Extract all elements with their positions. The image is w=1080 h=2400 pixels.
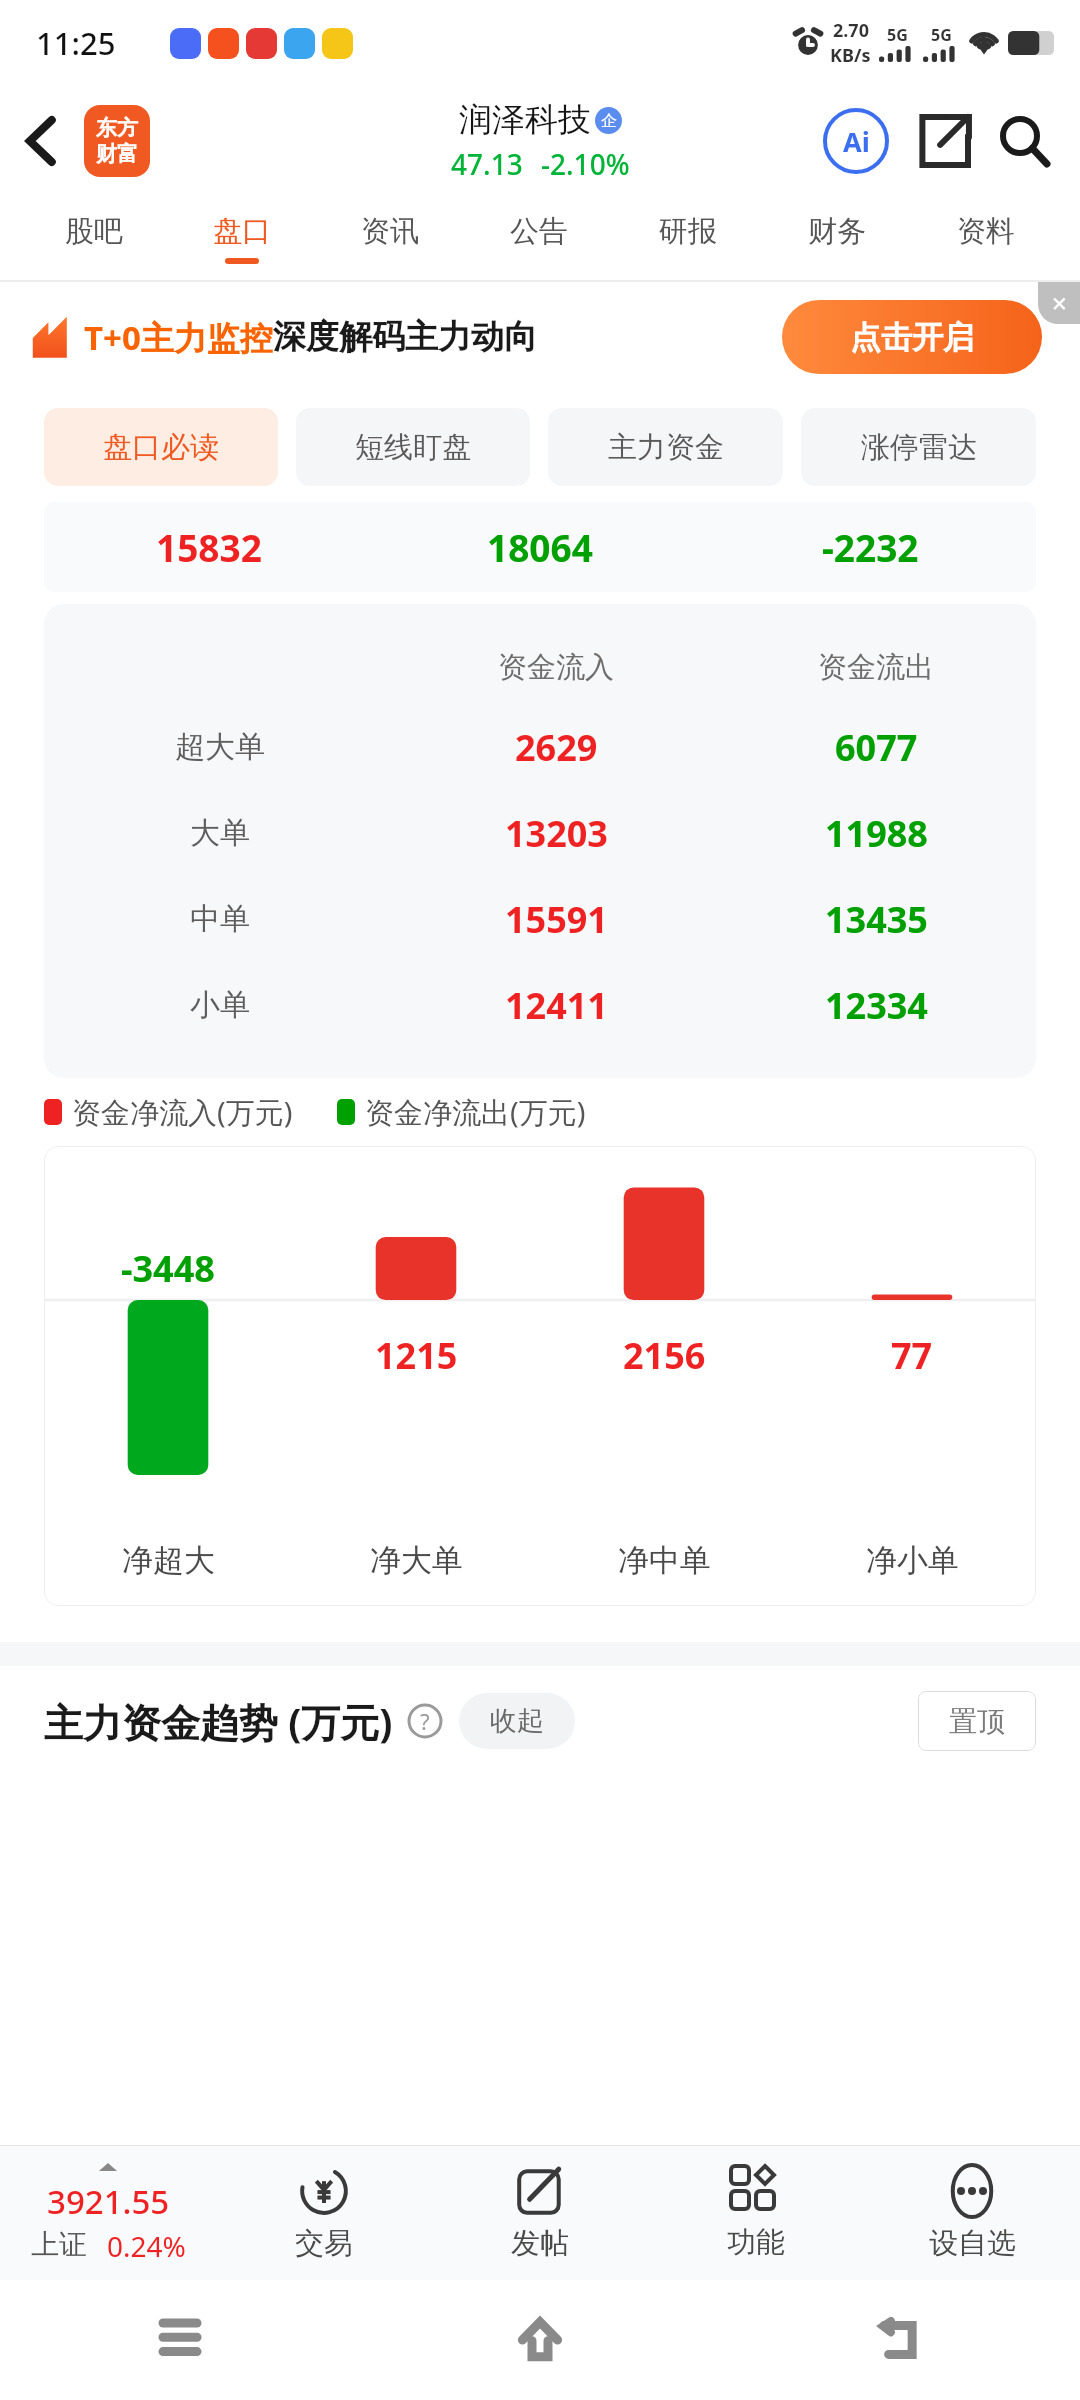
staticText: 1215 [375, 1331, 458, 1380]
staticText: 公告 [510, 213, 568, 250]
staticText: 资料 [957, 213, 1015, 250]
staticText: 资金净流入(万元) [72, 1092, 293, 1132]
staticText: T+0主力监控 [84, 315, 273, 360]
staticText: 东方 [96, 115, 138, 141]
staticText: 涨停雷达 [861, 429, 977, 466]
staticText: 资金流入 [498, 649, 614, 686]
button[interactable]: 财务 [762, 196, 911, 280]
button[interactable]: 股吧 [20, 196, 168, 280]
staticText: 润泽科技 [459, 99, 591, 141]
staticText: 2629 [515, 723, 598, 772]
staticText: 财富 [96, 141, 138, 167]
staticText: 主力资金趋势 (万元) [44, 1695, 393, 1748]
staticText: 超大单 [175, 728, 265, 766]
staticText: 设自选 [929, 2225, 1016, 2262]
staticText: 5G [887, 24, 908, 46]
staticText: 点击开启 [850, 318, 974, 357]
staticText: 18064 [487, 522, 593, 572]
staticText: 交易 [295, 2225, 353, 2262]
button[interactable]: 功能 [648, 2146, 864, 2280]
staticText: ✕ [1051, 292, 1068, 315]
button[interactable]: 最近任务 [150, 2310, 210, 2370]
staticText: 净大单 [370, 1541, 463, 1580]
staticText: 小单 [190, 986, 250, 1024]
staticText: 短线盯盘 [355, 429, 471, 466]
staticText: 资讯 [361, 213, 419, 250]
button[interactable]: 公告 [464, 196, 613, 280]
button[interactable]: 小单 [44, 962, 1036, 1048]
button[interactable]: 研报 [613, 196, 762, 280]
button[interactable]: 交易 [216, 2146, 432, 2280]
staticText: KB/s [830, 43, 871, 68]
button[interactable]: 盘口 [168, 196, 316, 280]
staticText: 财务 [808, 213, 866, 250]
button[interactable]: 发帖 [432, 2146, 648, 2280]
staticText: 0.24% [107, 2227, 186, 2265]
staticText: 发帖 [511, 2225, 569, 2262]
button[interactable]: 分享 [912, 109, 976, 173]
staticText: 盘口必读 [103, 429, 219, 466]
staticText: 收起 [490, 1704, 544, 1738]
staticText: 77 [891, 1331, 933, 1380]
staticText: Ai [843, 123, 870, 160]
staticText: 大单 [190, 814, 250, 852]
staticText: -2232 [822, 522, 919, 572]
button[interactable]: 搜索 [992, 109, 1056, 173]
button[interactable]: 点击开启 [782, 300, 1042, 374]
staticText: 置顶 [949, 1704, 1005, 1739]
staticText: 企 [601, 111, 617, 131]
staticText: 净超大 [122, 1541, 215, 1580]
button[interactable]: 中单 [44, 876, 1036, 962]
staticText: 13203 [505, 809, 608, 858]
staticText: 主力资金 [608, 429, 724, 466]
staticText: 15832 [156, 522, 262, 572]
staticText: 47.13 [451, 145, 523, 183]
staticText: 12411 [505, 981, 608, 1030]
staticText: 2.70 [833, 18, 869, 43]
staticText: 15591 [505, 895, 608, 944]
button[interactable]: 东方财富 [84, 105, 150, 177]
staticText: 功能 [727, 2224, 785, 2261]
staticText: 研报 [659, 213, 717, 250]
staticText: 资金流出 [818, 649, 934, 686]
button[interactable]: 置顶 [918, 1691, 1036, 1751]
button[interactable]: 大单 [44, 790, 1036, 876]
staticText: 13435 [825, 895, 928, 944]
button[interactable]: 盘口必读 [44, 408, 278, 486]
staticText: 11988 [825, 809, 928, 858]
staticText: 5G [931, 24, 952, 46]
staticText: 中单 [190, 900, 250, 938]
button[interactable]: 超大单 [44, 704, 1036, 790]
button[interactable]: 收起 [459, 1693, 575, 1749]
staticText: -2.10% [541, 145, 630, 183]
button[interactable]: 3921.55 [0, 2146, 216, 2280]
button[interactable]: 关闭 [1038, 282, 1080, 324]
staticText: -3448 [121, 1244, 215, 1293]
staticText: 盘口 [213, 213, 271, 250]
button[interactable]: 主页 [510, 2310, 570, 2370]
button[interactable]: 主力资金 [548, 408, 783, 486]
staticText: 净中单 [618, 1541, 711, 1580]
button[interactable]: 资料 [911, 196, 1060, 280]
staticText: ? [420, 1706, 430, 1736]
staticText: 12334 [825, 981, 928, 1030]
staticText: 深度解码主力动向 [273, 316, 537, 358]
button[interactable]: 设自选 [864, 2146, 1080, 2280]
staticText: 3921.55 [47, 2179, 170, 2224]
staticText: 净小单 [866, 1541, 959, 1580]
staticText: 2156 [623, 1331, 706, 1380]
staticText: 资金净流出(万元) [365, 1092, 586, 1132]
staticText: 股吧 [65, 213, 123, 250]
staticText: 11:25 [36, 22, 116, 64]
staticText: 6077 [835, 723, 918, 772]
button[interactable]: 返回 [870, 2310, 930, 2370]
button[interactable]: 帮助 [407, 1703, 443, 1739]
button[interactable]: AI助手 [820, 105, 892, 177]
button[interactable]: 返回 [10, 113, 66, 169]
button[interactable]: 短线盯盘 [296, 408, 530, 486]
button[interactable]: 涨停雷达 [801, 408, 1036, 486]
button[interactable]: 资讯 [316, 196, 464, 280]
staticText: 上证 [31, 2227, 87, 2262]
